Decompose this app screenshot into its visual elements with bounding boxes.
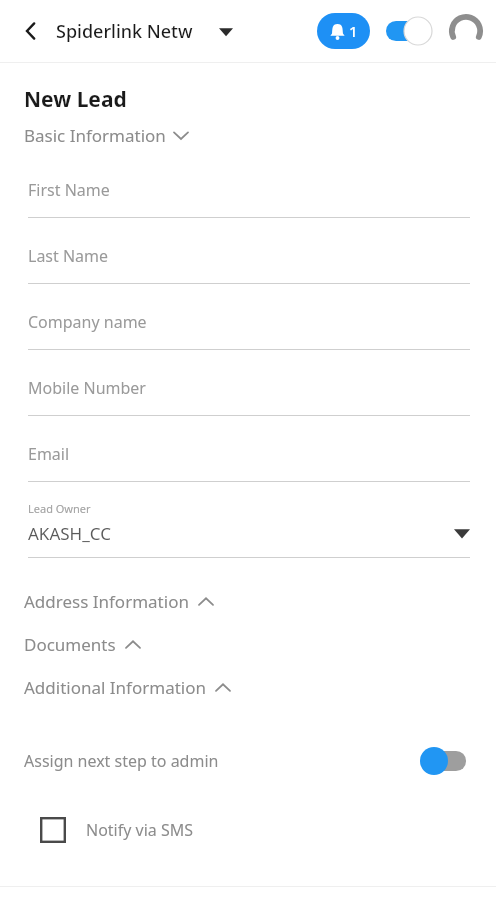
button[interactable]: Documents: [0, 623, 496, 666]
staticText: First Name: [28, 179, 110, 201]
button[interactable]: Notifications: [317, 13, 370, 49]
staticText: Spiderlink Netw: [56, 19, 193, 44]
button[interactable]: Toggle availability: [386, 17, 432, 45]
staticText: Mobile Number: [28, 377, 146, 399]
staticText: Last Name: [28, 245, 109, 267]
button[interactable]: Assign next step to admin switch: [420, 747, 468, 775]
button[interactable]: Notify via SMS: [0, 813, 210, 847]
button[interactable]: Basic Information: [0, 122, 204, 149]
staticText: Basic Information: [24, 124, 166, 147]
staticText: Lead Owner: [28, 501, 91, 516]
button[interactable]: Additional Information: [0, 666, 496, 709]
button[interactable]: Mobile Number: [0, 369, 496, 435]
staticText: Notify via SMS: [86, 819, 194, 841]
staticText: Assign next step to admin: [24, 750, 219, 772]
button[interactable]: Company name: [0, 303, 496, 369]
button[interactable]: Last Name: [0, 237, 496, 303]
staticText: Email: [28, 443, 70, 465]
button[interactable]: Assign next step to admin: [0, 739, 496, 783]
staticText: AKASH_CC: [28, 522, 111, 545]
button[interactable]: Spiderlink Netw: [56, 19, 233, 44]
staticText: New Lead: [24, 85, 127, 114]
staticText: Address Information: [24, 590, 189, 613]
button[interactable]: Email: [0, 435, 496, 501]
staticText: Additional Information: [24, 676, 206, 699]
staticText: Company name: [28, 311, 147, 333]
staticText: 1: [349, 21, 358, 41]
button[interactable]: Profile: [446, 11, 486, 51]
staticText: Documents: [24, 633, 116, 656]
button[interactable]: Address Information: [0, 580, 496, 623]
button[interactable]: First Name: [0, 171, 496, 237]
button[interactable]: Back: [14, 14, 48, 48]
button[interactable]: Lead Owner: [0, 501, 496, 558]
